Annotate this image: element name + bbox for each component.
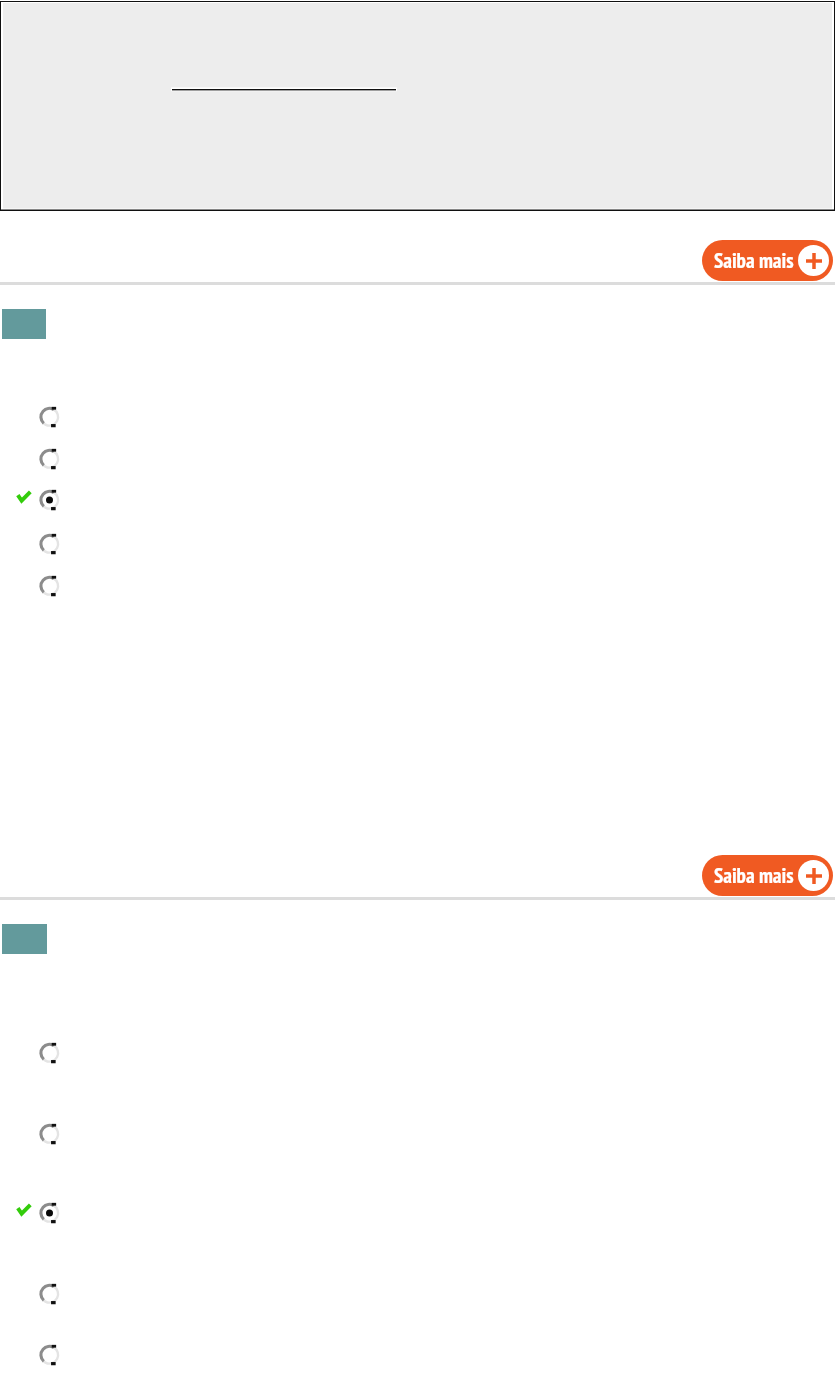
button[interactable]: Opção de resposta: [0, 1042, 835, 1064]
button[interactable]: Opção de resposta: [0, 1344, 835, 1366]
button[interactable]: Saiba mais: [702, 240, 833, 281]
staticText: Saiba mais: [714, 862, 794, 889]
button[interactable]: Resposta selecionada: [0, 1202, 835, 1224]
button[interactable]: Resposta selecionada: [0, 489, 835, 511]
button[interactable]: Opção de resposta: [0, 1283, 835, 1305]
button[interactable]: Opção de resposta: [0, 533, 835, 555]
button[interactable]: Opção de resposta: [0, 575, 835, 597]
button[interactable]: Opção de resposta: [0, 406, 835, 428]
staticText: Saiba mais: [714, 247, 794, 274]
button[interactable]: Opção de resposta: [0, 448, 835, 470]
button[interactable]: Saiba mais: [702, 855, 833, 896]
button[interactable]: Opção de resposta: [0, 1123, 835, 1145]
button[interactable]: Abrir link: [171, 68, 397, 92]
